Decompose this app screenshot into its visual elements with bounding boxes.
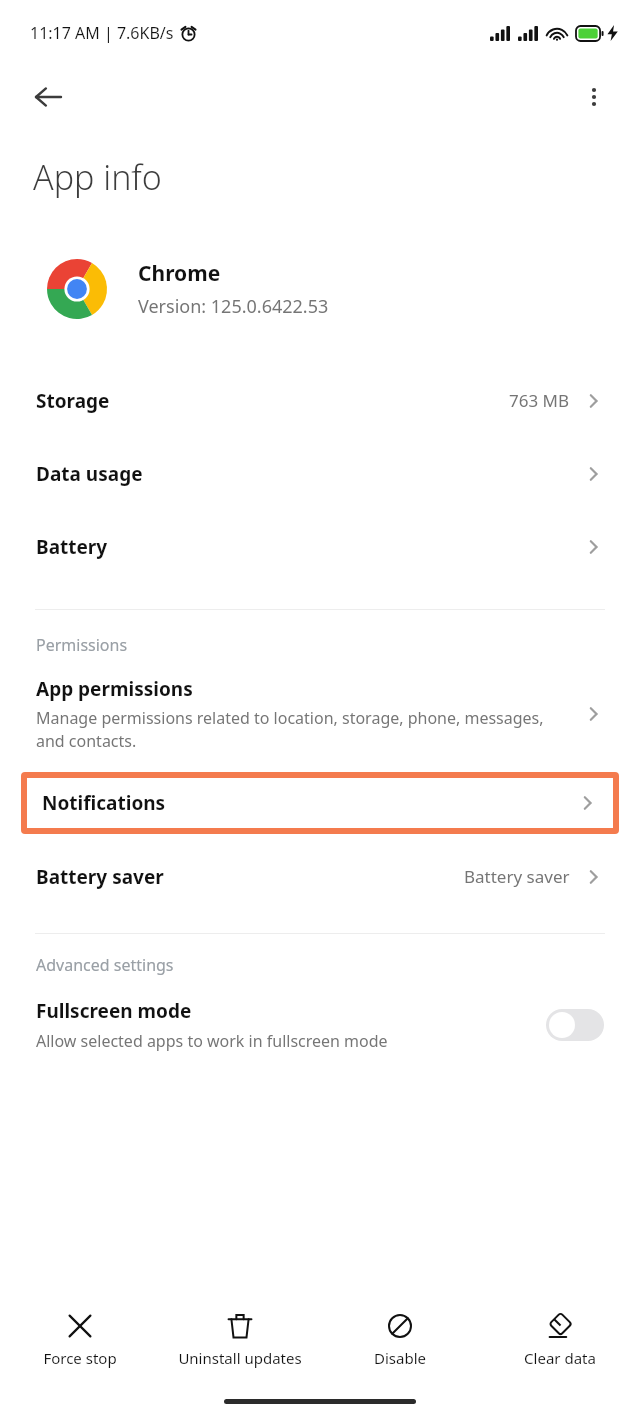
staticText: 763 MB	[509, 389, 570, 412]
button[interactable]: Back	[22, 71, 74, 123]
staticText: Chrome	[138, 259, 221, 288]
button[interactable]: Disable	[320, 1292, 480, 1388]
staticText: Clear data	[524, 1348, 596, 1368]
button[interactable]: Battery	[0, 510, 640, 583]
staticText: Battery saver	[36, 864, 164, 890]
button[interactable]: Uninstall updates	[160, 1292, 320, 1388]
button[interactable]: Notifications	[27, 778, 613, 828]
button[interactable]: Storage	[0, 364, 640, 437]
staticText: 11:17 AM | 7.6KB/s	[30, 22, 174, 44]
staticText: Permissions	[36, 634, 128, 656]
staticText: App info	[33, 154, 162, 200]
staticText: Allow selected apps to work in fullscree…	[36, 1030, 388, 1052]
button[interactable]: Battery saver	[0, 840, 640, 913]
staticText: Manage permissions related to location, …	[36, 707, 566, 752]
staticText: Disable	[374, 1348, 426, 1368]
staticText: Uninstall updates	[178, 1348, 302, 1368]
staticText: Data usage	[36, 461, 143, 487]
staticText: Battery saver	[464, 865, 570, 888]
button[interactable]: Clear data	[480, 1292, 640, 1388]
staticText: Battery	[36, 534, 108, 560]
staticText: Advanced settings	[36, 954, 174, 976]
staticText: App permissions	[36, 676, 193, 702]
staticText: Storage	[36, 388, 110, 414]
button[interactable]: More options	[568, 71, 620, 123]
button[interactable]: Force stop	[0, 1292, 160, 1388]
button[interactable]: Data usage	[0, 437, 640, 510]
button[interactable]: App permissions	[0, 664, 640, 764]
staticText: Version: 125.0.6422.53	[138, 294, 329, 319]
button[interactable]: Fullscreen mode	[0, 988, 640, 1062]
staticText: Notifications	[42, 790, 166, 816]
staticText: Fullscreen mode	[36, 998, 192, 1024]
staticText: Force stop	[43, 1348, 117, 1368]
